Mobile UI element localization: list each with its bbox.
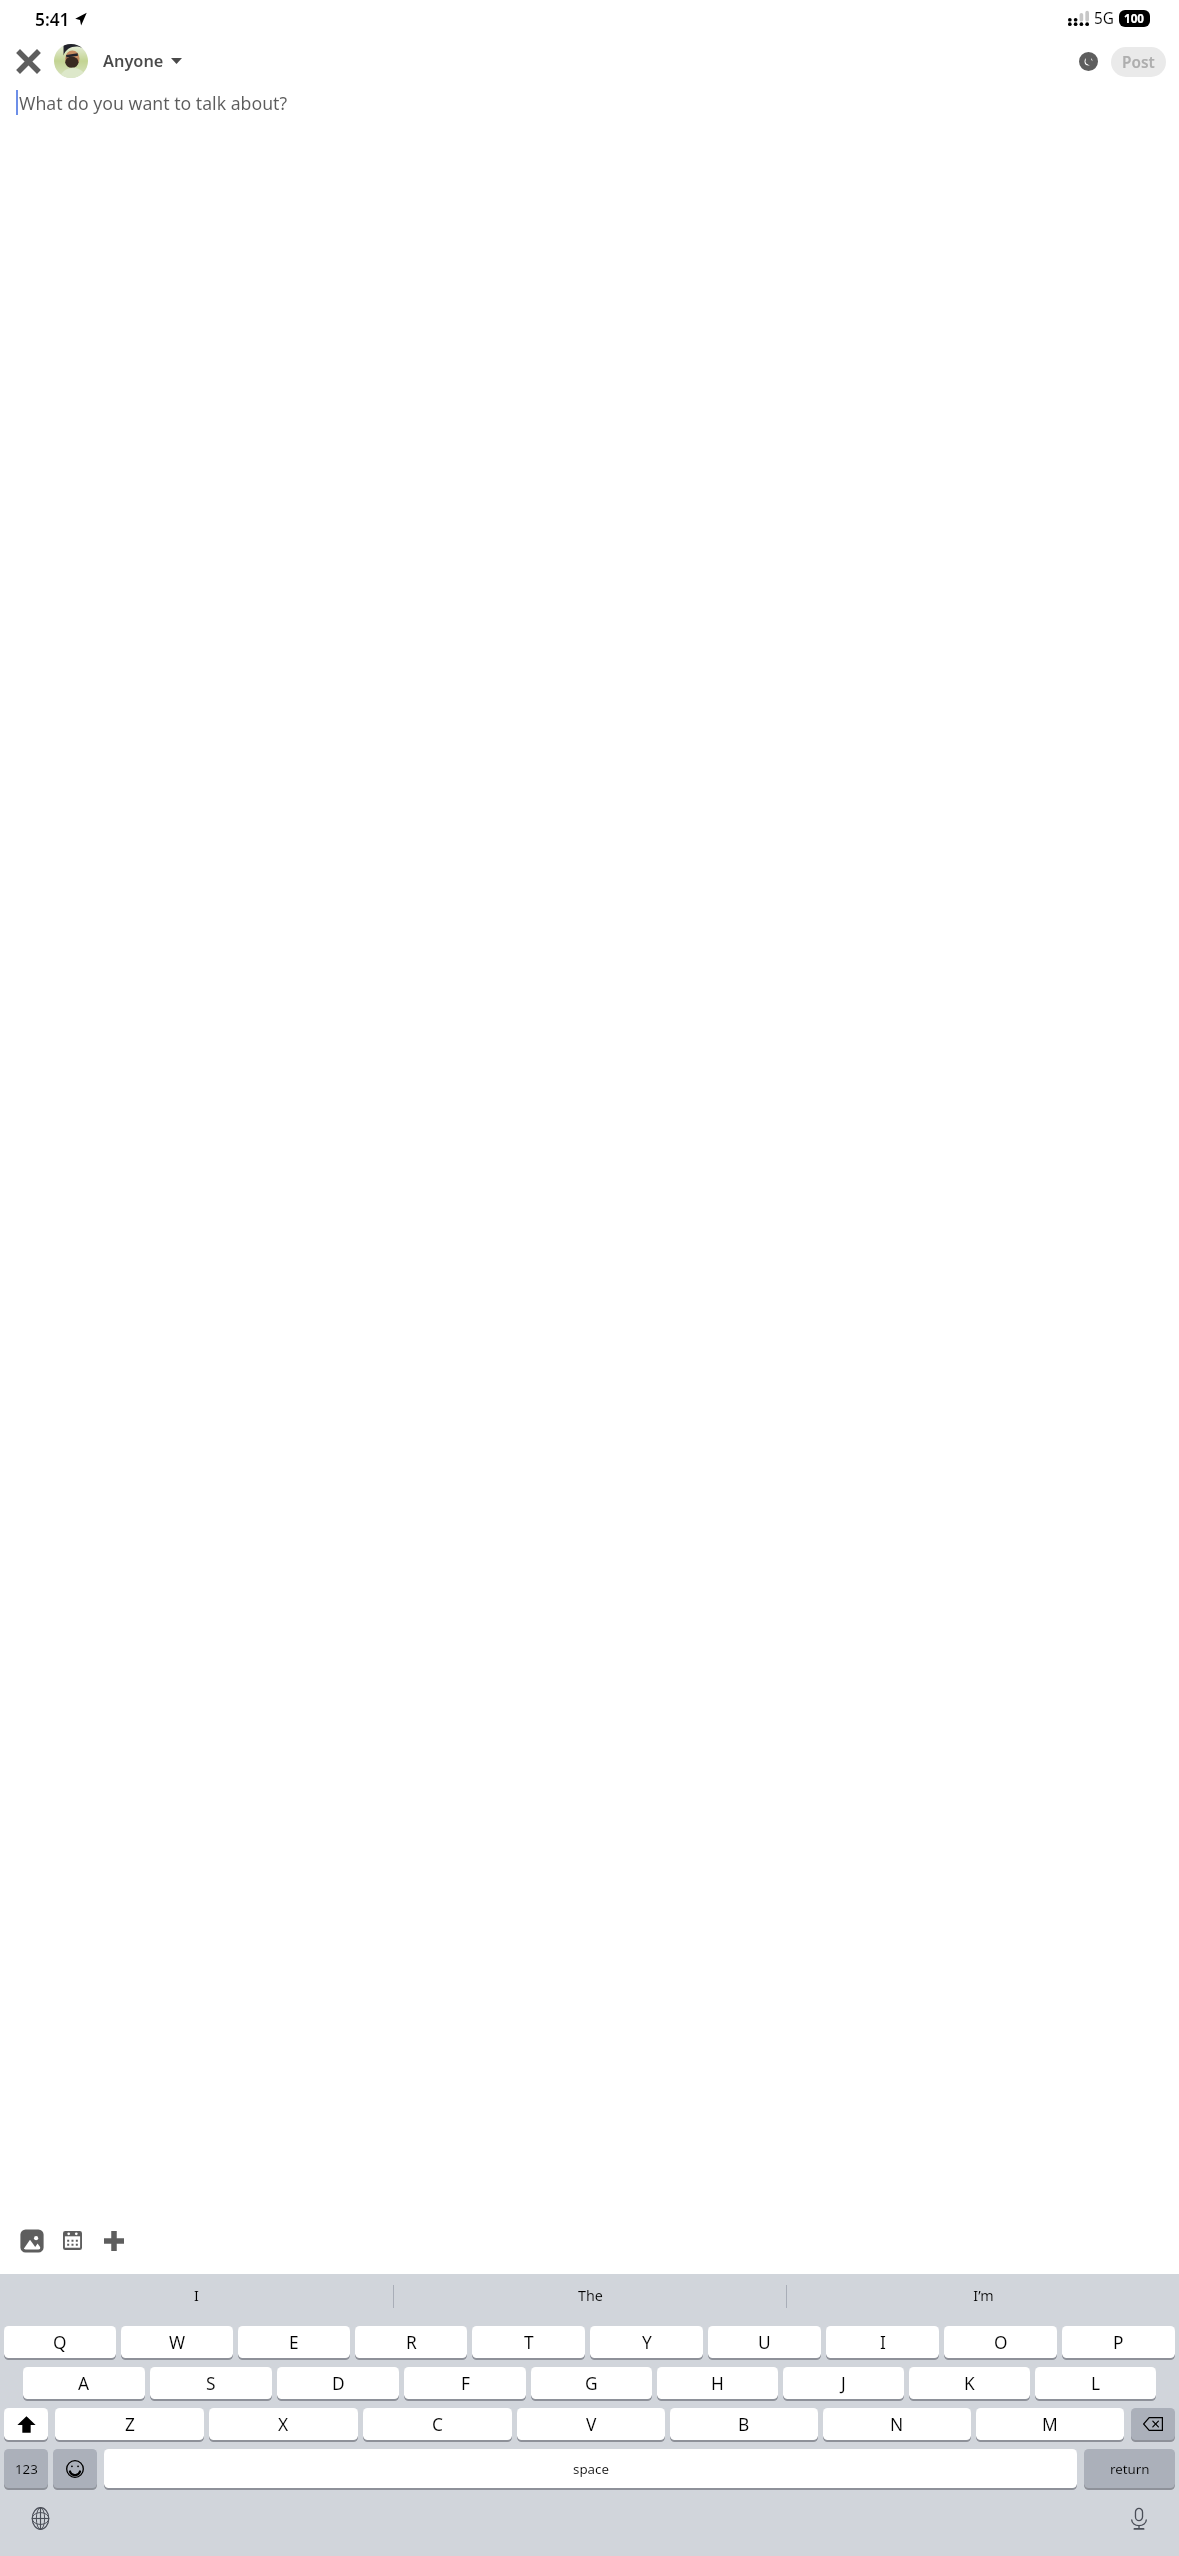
button[interactable]: What do you want to talk about? xyxy=(16,90,1163,115)
staticText: What do you want to talk about? xyxy=(19,91,288,115)
staticText: C xyxy=(432,2412,443,2436)
button[interactable]: Dictate xyxy=(1123,2503,1154,2534)
button[interactable]: G xyxy=(531,2367,652,2399)
button[interactable]: H xyxy=(657,2367,778,2399)
button[interactable]: Z xyxy=(55,2408,204,2440)
button[interactable]: Emoji xyxy=(53,2449,97,2488)
button[interactable]: Post xyxy=(1111,47,1166,77)
staticText: T xyxy=(524,2330,534,2354)
staticText: G xyxy=(585,2371,598,2395)
button[interactable]: Schedule post xyxy=(1073,46,1104,77)
button[interactable]: Create event xyxy=(54,2222,91,2259)
button[interactable]: Add photo xyxy=(13,2222,50,2259)
button[interactable]: F xyxy=(404,2367,526,2399)
staticText: I xyxy=(194,2286,199,2306)
button[interactable]: B xyxy=(670,2408,818,2440)
button[interactable]: More xyxy=(95,2222,132,2259)
button[interactable]: W xyxy=(121,2326,233,2358)
button[interactable]: T xyxy=(472,2326,585,2358)
staticText: X xyxy=(278,2412,289,2436)
button[interactable]: Anyone xyxy=(54,44,182,78)
button[interactable]: return xyxy=(1084,2449,1175,2488)
button[interactable]: Y xyxy=(590,2326,703,2358)
staticText: return xyxy=(1110,2460,1150,2478)
staticText: A xyxy=(78,2371,90,2395)
button[interactable]: space xyxy=(104,2449,1077,2488)
staticText: H xyxy=(711,2371,724,2395)
staticText: R xyxy=(406,2330,417,2354)
staticText: 5:41 xyxy=(35,7,70,31)
button[interactable]: C xyxy=(363,2408,512,2440)
staticText: 100 xyxy=(1124,11,1145,27)
button[interactable]: N xyxy=(823,2408,971,2440)
button[interactable]: I xyxy=(0,2274,393,2318)
staticText: E xyxy=(289,2330,299,2354)
staticText: 5G xyxy=(1094,8,1114,29)
button[interactable]: The xyxy=(394,2274,786,2318)
staticText: L xyxy=(1091,2371,1101,2395)
button[interactable]: E xyxy=(238,2326,350,2358)
button[interactable]: S xyxy=(150,2367,272,2399)
staticText: V xyxy=(586,2412,597,2436)
button[interactable]: I’m xyxy=(787,2274,1179,2318)
button[interactable]: Q xyxy=(4,2326,116,2358)
staticText: space xyxy=(573,2460,609,2478)
staticText: K xyxy=(964,2371,975,2395)
staticText: I’m xyxy=(973,2286,994,2306)
staticText: Y xyxy=(642,2330,652,2354)
staticText: Z xyxy=(125,2412,135,2436)
staticText: N xyxy=(890,2412,904,2436)
button[interactable]: M xyxy=(976,2408,1124,2440)
button[interactable]: P xyxy=(1062,2326,1175,2358)
staticText: B xyxy=(738,2412,750,2436)
button[interactable]: R xyxy=(355,2326,467,2358)
staticText: D xyxy=(332,2371,345,2395)
staticText: U xyxy=(758,2330,771,2354)
button[interactable]: U xyxy=(708,2326,821,2358)
button[interactable]: Backspace xyxy=(1131,2408,1175,2440)
staticText: M xyxy=(1042,2412,1058,2436)
button[interactable]: O xyxy=(944,2326,1057,2358)
button[interactable]: I xyxy=(826,2326,939,2358)
button[interactable]: X xyxy=(209,2408,358,2440)
button[interactable]: L xyxy=(1035,2367,1156,2399)
staticText: P xyxy=(1113,2330,1124,2354)
staticText: O xyxy=(994,2330,1008,2354)
button[interactable]: A xyxy=(23,2367,145,2399)
button[interactable]: Change keyboard xyxy=(25,2503,56,2534)
staticText: J xyxy=(841,2371,846,2395)
button[interactable]: Close xyxy=(13,46,44,77)
staticText: I xyxy=(880,2330,886,2354)
staticText: S xyxy=(206,2371,216,2395)
staticText: 123 xyxy=(15,2460,38,2478)
button[interactable]: Numbers xyxy=(4,2449,48,2488)
button[interactable]: K xyxy=(909,2367,1030,2399)
staticText: Post xyxy=(1122,52,1155,73)
button[interactable]: D xyxy=(277,2367,399,2399)
button[interactable]: Shift xyxy=(4,2408,48,2440)
button[interactable]: V xyxy=(517,2408,665,2440)
button[interactable]: J xyxy=(783,2367,904,2399)
staticText: F xyxy=(461,2371,470,2395)
staticText: Q xyxy=(53,2330,67,2354)
staticText: The xyxy=(578,2286,603,2306)
staticText: Anyone xyxy=(103,50,164,72)
staticText: W xyxy=(169,2330,186,2354)
